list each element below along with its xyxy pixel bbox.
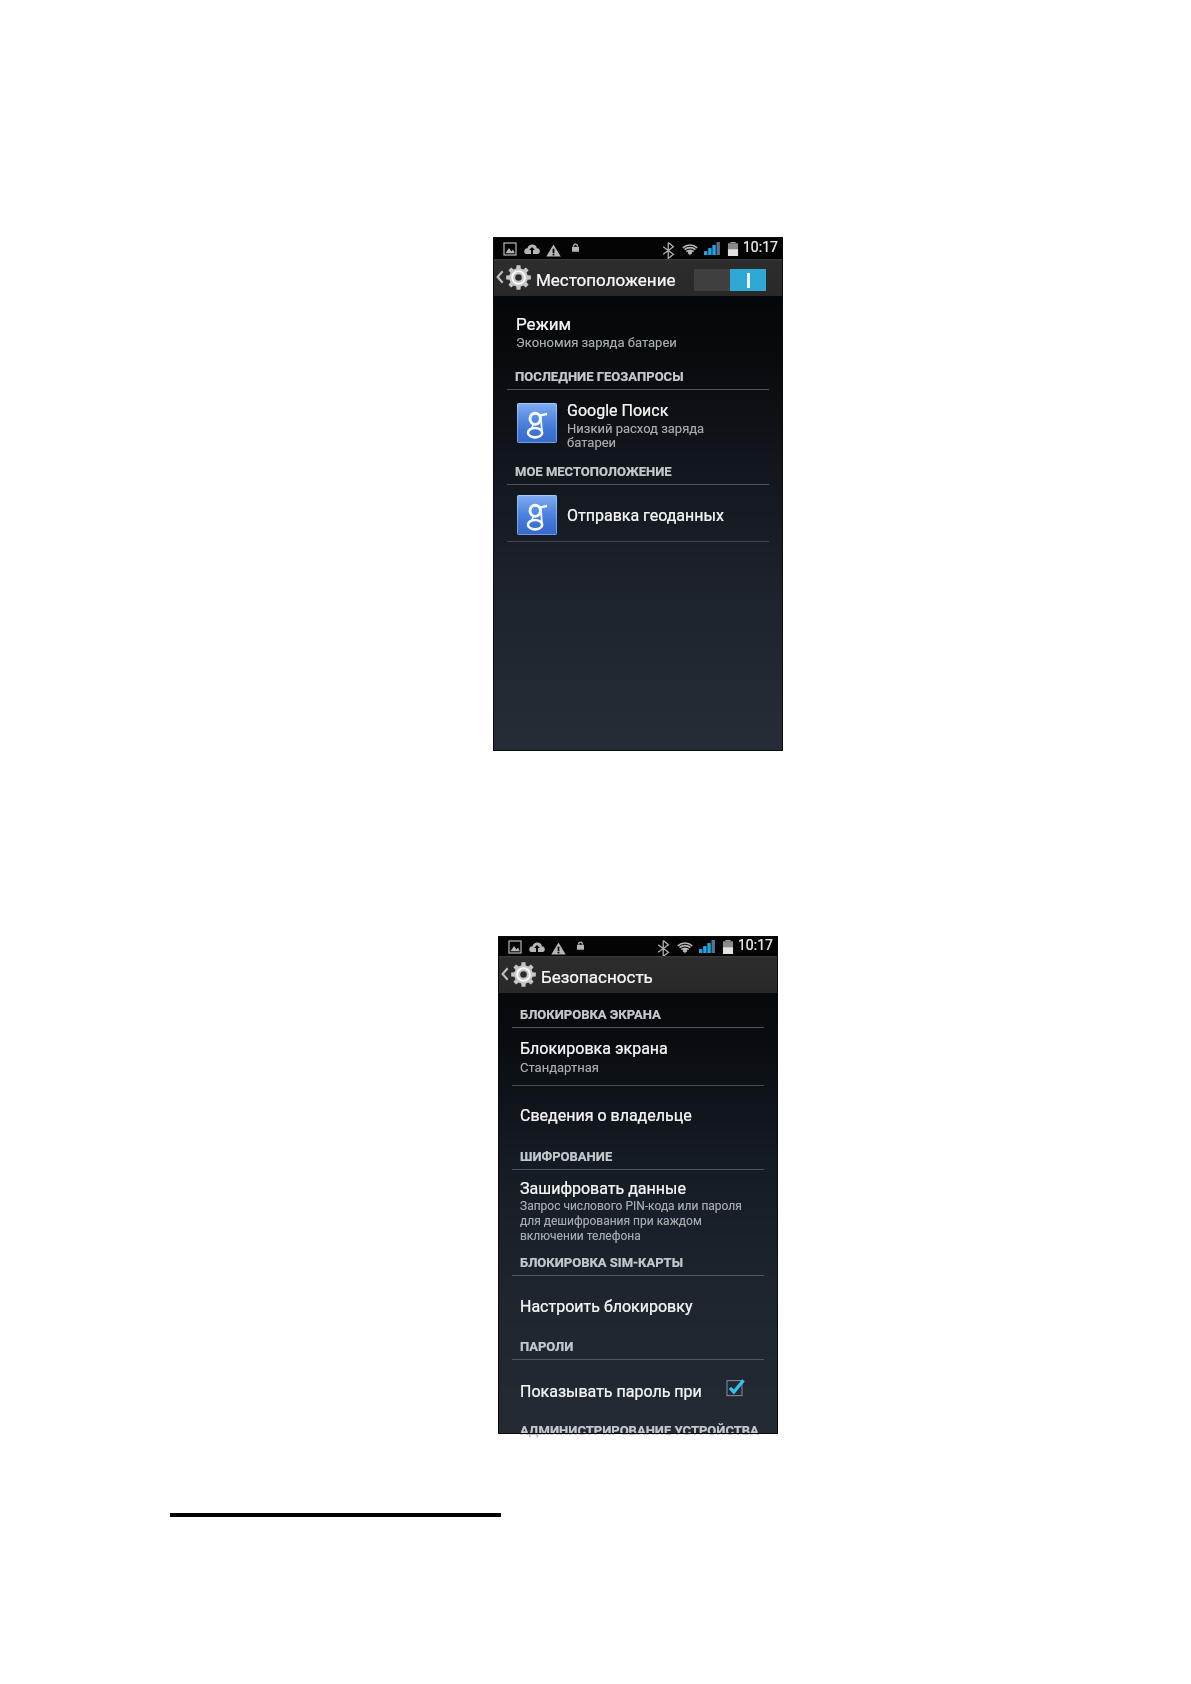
staticText: Зашифровать данные [520,1179,686,1198]
staticText: Блокировка экрана [520,1039,668,1058]
staticText: БЛОКИРОВКА ЭКРАНА [520,1007,661,1022]
button[interactable]: Переключатель [694,269,766,291]
staticText: БЛОКИРОВКА SIM-КАРТЫ [520,1255,683,1270]
staticText: Стандартная [520,1060,599,1075]
staticText: батареи [567,435,617,450]
staticText: ПОСЛЕДНИЕ ГЕОЗАПРОСЫ [515,369,684,384]
staticText: Сведения о владельце [520,1106,692,1125]
staticText: Безопасность [541,967,653,987]
staticText: 10:17 [738,937,773,953]
button[interactable]: Назад [494,265,506,289]
staticText: Экономия заряда батареи [516,335,677,350]
staticText: Режим [516,314,572,334]
staticText: Настроить блокировку [520,1297,693,1316]
staticText: Google Поиск [567,401,669,420]
staticText: Запрос числового PIN-кода или пароля [520,1199,742,1213]
staticText: АДМИНИСТРИРОВАНИЕ УСТРОЙСТВА [520,1423,759,1438]
staticText: для дешифрования при каждом [520,1214,702,1228]
button[interactable]: Отправка геоданных [493,489,783,541]
staticText: ШИФРОВАНИЕ [520,1149,613,1164]
staticText: МОЕ МЕСТОПОЛОЖЕНИЕ [515,464,672,479]
button[interactable]: Настроить блокировку [498,1286,778,1324]
button[interactable]: Показывать пароль при [498,1372,778,1410]
staticText: Отправка геоданных [567,506,724,525]
staticText: Низкий расход заряда [567,421,705,436]
staticText: Показывать пароль при [520,1382,702,1401]
button[interactable]: Блокировка экрана [498,1031,778,1083]
button[interactable]: Назад [499,962,511,986]
staticText: Местоположение [536,270,676,290]
button[interactable]: Режим [493,301,783,349]
button[interactable]: Google Поиск [493,395,783,453]
staticText: включении телефона [520,1229,641,1243]
staticText: 10:17 [743,239,778,255]
button[interactable]: Сведения о владельце [498,1096,778,1131]
staticText: ПАРОЛИ [520,1339,574,1354]
button[interactable]: Зашифровать данные [498,1172,778,1238]
